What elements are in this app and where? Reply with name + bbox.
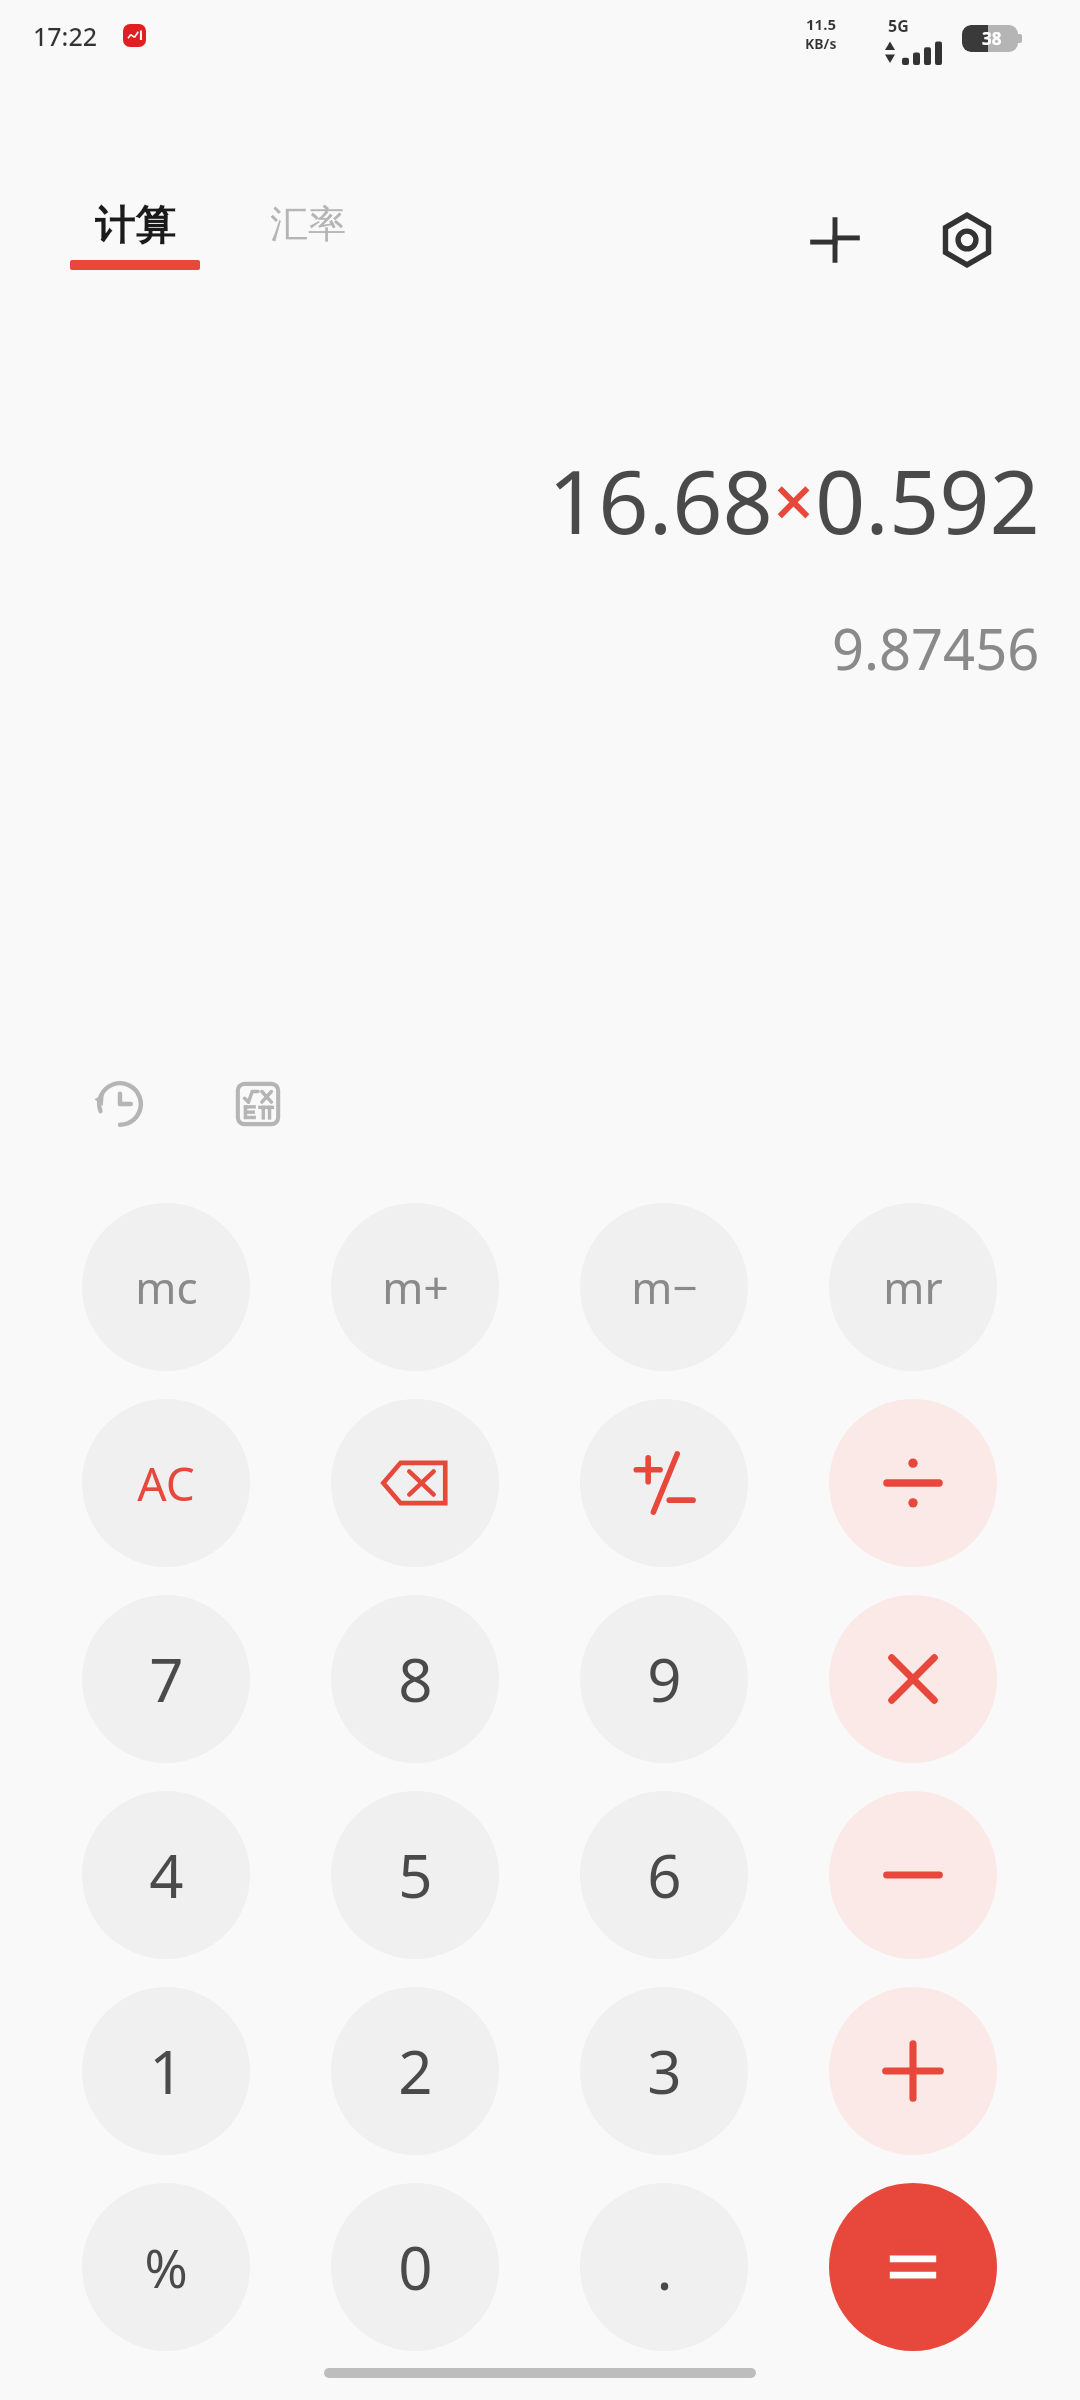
button[interactable]: 9 <box>580 1595 748 1763</box>
staticText: AC <box>137 1452 195 1515</box>
staticText: m− <box>631 1257 698 1317</box>
button[interactable]: 3 <box>580 1987 748 2155</box>
staticText: 38 <box>982 27 1002 50</box>
staticText: 0 <box>398 2226 433 2308</box>
staticText: 16.68 <box>548 440 773 560</box>
button[interactable]: Backspace <box>331 1399 499 1567</box>
staticText: 9 <box>647 1638 682 1720</box>
button[interactable]: Settings <box>922 195 1012 285</box>
staticText: 5G <box>888 15 909 37</box>
button[interactable]: Collapse keypad <box>790 195 880 285</box>
button[interactable]: Toggle sign <box>580 1399 748 1567</box>
staticText: 8 <box>398 1638 433 1720</box>
button[interactable]: AC <box>82 1399 250 1567</box>
button[interactable]: Equals <box>829 2183 997 2351</box>
staticText: KB/s <box>805 34 837 53</box>
button[interactable]: Minus <box>829 1791 997 1959</box>
button[interactable]: % <box>82 2183 250 2351</box>
button[interactable]: 8 <box>331 1595 499 1763</box>
staticText: mr <box>883 1257 943 1317</box>
staticText: m+ <box>382 1257 449 1317</box>
button[interactable]: 6 <box>580 1791 748 1959</box>
button[interactable]: 0 <box>331 2183 499 2351</box>
staticText: × <box>773 451 815 549</box>
staticText: 0.592 <box>815 440 1040 560</box>
staticText: 5 <box>398 1834 433 1916</box>
staticText: % <box>144 2232 188 2303</box>
button[interactable]: 7 <box>82 1595 250 1763</box>
staticText: 3 <box>647 2030 682 2112</box>
button[interactable]: 汇率 <box>256 196 360 252</box>
staticText: 17:22 <box>33 19 98 53</box>
button[interactable]: 5 <box>331 1791 499 1959</box>
button[interactable]: m− <box>580 1203 748 1371</box>
button[interactable]: Multiply <box>829 1595 997 1763</box>
staticText: 9.87456 <box>832 610 1040 686</box>
button[interactable]: History <box>78 1062 162 1146</box>
button[interactable]: Divide <box>829 1399 997 1567</box>
staticText: 11.5 <box>806 14 836 34</box>
staticText: 7 <box>149 1638 184 1720</box>
staticText: 汇率 <box>270 200 346 248</box>
button[interactable]: 4 <box>82 1791 250 1959</box>
button[interactable]: mr <box>829 1203 997 1371</box>
button[interactable]: mc <box>82 1203 250 1371</box>
button[interactable]: Scientific functions <box>216 1062 300 1146</box>
staticText: 2 <box>398 2030 433 2112</box>
button[interactable]: 2 <box>331 1987 499 2155</box>
button[interactable]: 计算 <box>56 196 214 274</box>
button[interactable]: 1 <box>82 1987 250 2155</box>
button[interactable]: Plus <box>829 1987 997 2155</box>
staticText: 4 <box>149 1834 184 1916</box>
staticText: 6 <box>647 1834 682 1916</box>
button[interactable]: . <box>580 2183 748 2351</box>
staticText: 1 <box>149 2030 184 2112</box>
staticText: . <box>656 2226 673 2308</box>
button[interactable]: m+ <box>331 1203 499 1371</box>
staticText: 计算 <box>95 200 175 250</box>
staticText: mc <box>135 1257 198 1317</box>
